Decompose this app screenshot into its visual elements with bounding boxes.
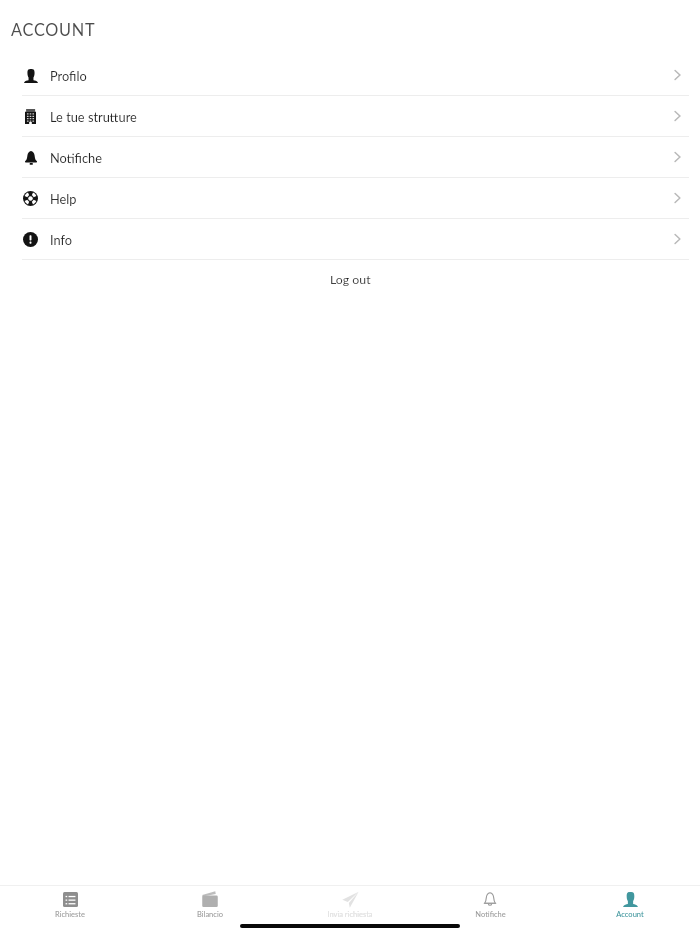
button[interactable]: Notifiche	[420, 886, 560, 919]
button[interactable]: Help	[0, 178, 700, 219]
staticText: ACCOUNT	[11, 20, 96, 40]
staticText: Richieste	[55, 910, 85, 919]
staticText: Help	[50, 191, 77, 206]
button[interactable]: Log out	[0, 260, 700, 298]
staticText: Log out	[330, 272, 371, 287]
button[interactable]: Bilancio	[140, 886, 280, 919]
button[interactable]: Profilo	[0, 55, 700, 96]
button[interactable]: Notifiche	[0, 137, 700, 178]
staticText: Info	[50, 232, 73, 247]
button[interactable]: Invia richiesta	[280, 886, 420, 919]
staticText: Account	[616, 910, 644, 919]
staticText: Bilancio	[197, 910, 223, 919]
staticText: Notifiche	[475, 910, 506, 919]
staticText: Profilo	[50, 68, 87, 83]
button[interactable]: Info	[0, 219, 700, 260]
button[interactable]: Le tue strutture	[0, 96, 700, 137]
button[interactable]: Richieste	[0, 886, 140, 919]
staticText: Notifiche	[50, 150, 102, 165]
staticText: Invia richiesta	[327, 910, 373, 919]
staticText: Le tue strutture	[50, 109, 137, 124]
button[interactable]: Account	[560, 886, 700, 919]
